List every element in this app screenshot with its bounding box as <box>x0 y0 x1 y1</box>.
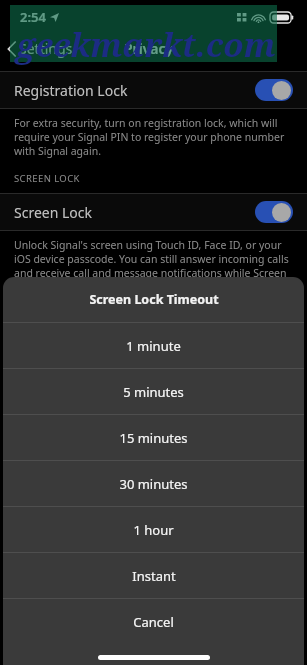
staticText: Instant <box>132 567 176 585</box>
staticText: Cancel <box>133 613 174 631</box>
button[interactable]: Cancel <box>3 599 304 644</box>
staticText: 1 minute <box>126 337 181 355</box>
button[interactable]: 1 minute <box>3 323 304 368</box>
button[interactable]: 5 minutes <box>3 369 304 414</box>
staticText: Settings <box>19 39 73 58</box>
button[interactable]: Toggle Registration Lock <box>255 79 293 101</box>
staticText: 1 hour <box>133 521 174 539</box>
button[interactable]: 30 minutes <box>3 461 304 506</box>
staticText: 5 minutes <box>123 383 184 401</box>
button[interactable]: Instant <box>3 553 304 598</box>
staticText: Screen Lock <box>14 203 255 222</box>
staticText: Screen Lock Timeout <box>89 291 219 308</box>
staticText: 30 minutes <box>119 475 188 493</box>
staticText: Unlock Signal's screen using Touch ID, F… <box>14 238 293 308</box>
button[interactable]: Screen Lock <box>0 194 307 230</box>
staticText: Registration Lock <box>14 81 255 100</box>
button[interactable]: Screen Lock Timeout <box>3 277 304 322</box>
button[interactable]: 1 hour <box>3 507 304 552</box>
button[interactable]: Settings <box>0 35 81 62</box>
button[interactable]: Registration Lock <box>0 72 307 108</box>
staticText: SCREEN LOCK <box>14 172 80 185</box>
staticText: geekmarkt.com <box>16 22 276 67</box>
staticText: For extra security, turn on registration… <box>14 116 293 158</box>
staticText: 2:54 <box>20 8 46 26</box>
staticText: Privacy <box>124 39 174 58</box>
staticText: 15 minutes <box>119 429 188 447</box>
button[interactable]: Toggle Screen Lock <box>255 201 293 223</box>
button[interactable]: 15 minutes <box>3 415 304 460</box>
